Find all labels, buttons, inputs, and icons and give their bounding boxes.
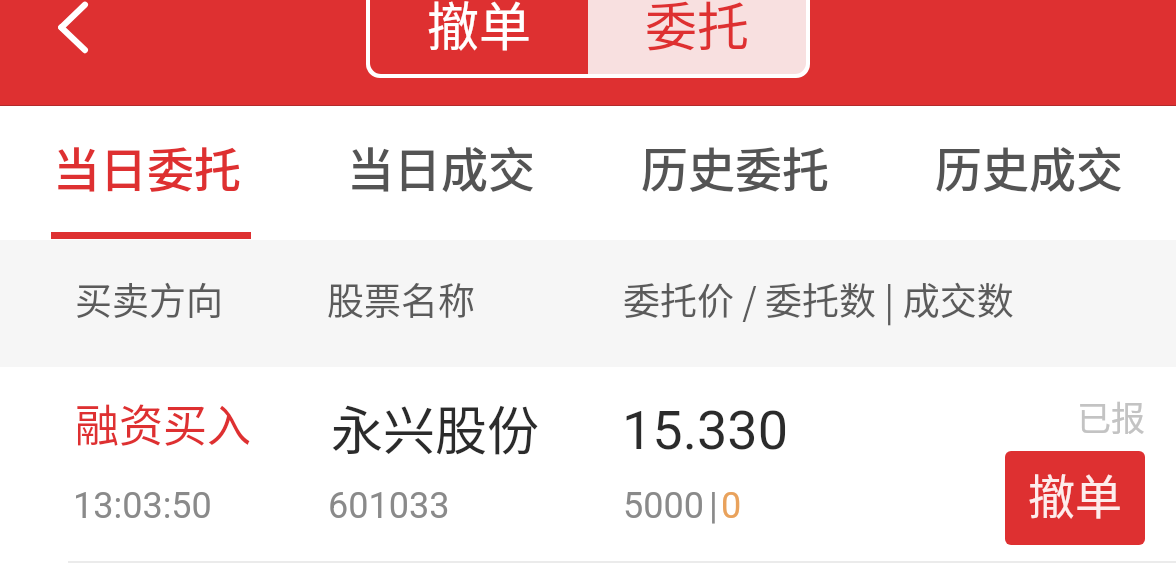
- button[interactable]: 当日委托: [0, 106, 294, 240]
- staticText: 委托: [645, 0, 750, 61]
- staticText: 15.330: [622, 399, 788, 462]
- button[interactable]: 撤单: [1005, 451, 1145, 545]
- staticText: 撤单: [1028, 459, 1122, 527]
- staticText: 0: [721, 485, 742, 527]
- staticText: 已报: [1077, 392, 1145, 441]
- staticText: 601033: [328, 485, 450, 527]
- staticText: 历史委托: [641, 132, 829, 200]
- staticText: 当日成交: [347, 132, 535, 200]
- staticText: 13:03:50: [73, 485, 212, 527]
- button[interactable]: 当日成交: [294, 106, 588, 240]
- staticText: 股票名称: [327, 272, 475, 326]
- button[interactable]: 历史委托: [588, 106, 882, 240]
- staticText: 5000: [623, 485, 704, 527]
- button[interactable]: 历史成交: [882, 106, 1176, 240]
- staticText: |: [709, 485, 718, 527]
- button[interactable]: Back: [16, 0, 106, 80]
- staticText: 买卖方向: [75, 272, 223, 326]
- staticText: 历史成交: [935, 132, 1123, 200]
- staticText: 撤单: [427, 0, 532, 61]
- staticText: 永兴股份: [331, 390, 540, 465]
- staticText: 融资买入: [75, 391, 251, 455]
- button[interactable]: 委托: [588, 0, 806, 74]
- staticText: 当日委托: [53, 132, 241, 200]
- staticText: 委托价 / 委托数 | 成交数: [623, 272, 1014, 326]
- button[interactable]: 撤单: [370, 0, 588, 74]
- button[interactable]: 融资买入: [0, 367, 1176, 574]
